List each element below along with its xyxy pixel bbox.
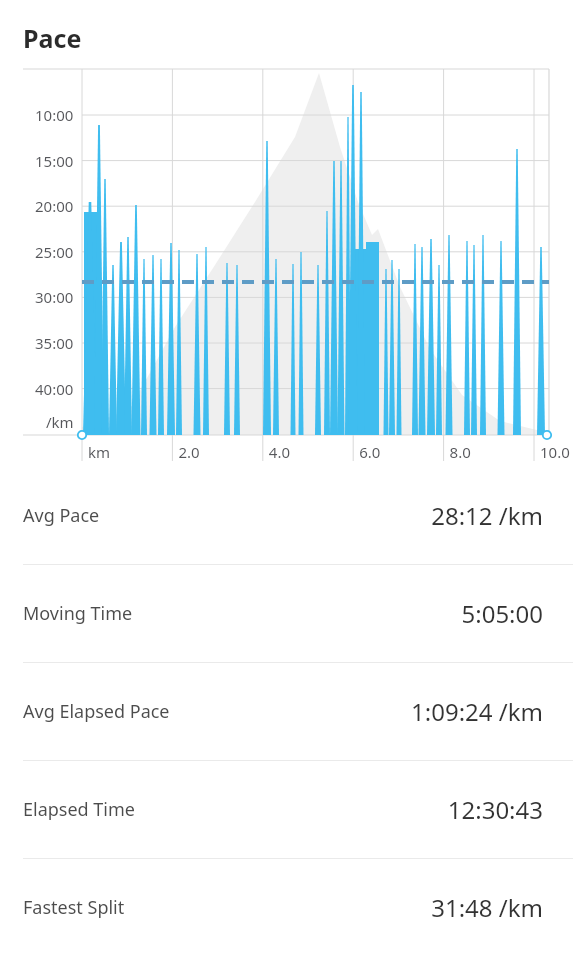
button[interactable]: Avg Pace [0, 467, 573, 564]
button[interactable]: Elapsed Time [0, 760, 573, 858]
staticText: 28:12 /km [431, 499, 543, 532]
other: Pace over distance chart [0, 55, 573, 467]
staticText: Moving Time [23, 601, 133, 626]
staticText: Elapsed Time [23, 797, 135, 822]
button[interactable]: Fastest Split [0, 858, 573, 956]
button[interactable]: Avg Elapsed Pace [0, 662, 573, 760]
staticText: 1:09:24 /km [411, 695, 543, 728]
staticText: Pace [23, 21, 82, 55]
staticText: 12:30:43 [447, 793, 543, 826]
staticText: Fastest Split [23, 895, 125, 920]
staticText: Avg Elapsed Pace [23, 699, 170, 724]
staticText: 31:48 /km [431, 891, 543, 924]
staticText: 5:05:00 [461, 597, 543, 630]
staticText: Avg Pace [23, 503, 100, 528]
button[interactable]: Moving Time [0, 564, 573, 662]
